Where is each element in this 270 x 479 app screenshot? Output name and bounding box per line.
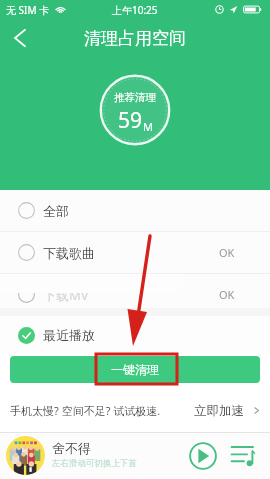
staticText: 下载MV — [43, 286, 89, 304]
button[interactable]: Playlist — [230, 444, 256, 468]
button[interactable]: Back — [6, 24, 34, 52]
staticText: 清理占用空间 — [84, 28, 186, 49]
staticText: 全部 — [43, 203, 69, 219]
staticText: 手机太慢? 空间不足? 试试极速. — [10, 403, 161, 418]
staticText: 左右滑动可切换上下首 — [52, 458, 137, 469]
staticText: 下载歌曲 — [43, 245, 95, 261]
staticText: 59 — [118, 106, 143, 135]
staticText: OK — [219, 245, 235, 260]
staticText: 最近播放 — [43, 327, 95, 343]
button[interactable]: 全部 — [0, 190, 270, 231]
staticText: 无 SIM 卡 — [6, 3, 50, 17]
staticText: 推荐清理 — [114, 91, 156, 104]
staticText: M — [143, 119, 153, 134]
staticText: OK — [219, 287, 235, 302]
button[interactable]: 下载MV — [0, 274, 270, 315]
button[interactable]: 手机太慢? 空间不足? 试试极速. — [0, 389, 270, 432]
staticText: 一键清理 — [111, 362, 159, 377]
button[interactable]: 一键清理 — [10, 356, 260, 383]
staticText: 立即加速 — [194, 403, 244, 419]
staticText: 舍不得 — [52, 440, 91, 456]
button[interactable]: Play — [189, 442, 217, 470]
button[interactable]: 下载歌曲 — [0, 232, 270, 273]
staticText: 上午10:25 — [112, 3, 158, 17]
button[interactable]: 最近播放 — [0, 316, 270, 354]
